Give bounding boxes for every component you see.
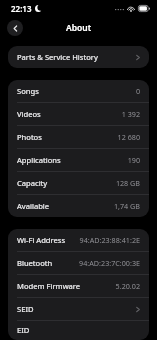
staticText: Modem Firmware xyxy=(17,281,81,291)
staticText: 128 GB xyxy=(115,178,140,188)
staticText: EID xyxy=(17,325,30,335)
staticText: Photos xyxy=(17,132,42,142)
staticText: Songs xyxy=(17,86,39,96)
button[interactable]: Parts & Service History xyxy=(8,46,149,68)
staticText: Bluetooth xyxy=(17,258,53,268)
button[interactable]: Available xyxy=(8,195,149,217)
button[interactable]: Wi-Fi Address xyxy=(8,229,149,252)
staticText: Capacity xyxy=(17,178,48,188)
staticText: 22:13 xyxy=(11,3,32,14)
staticText: About xyxy=(66,22,92,34)
button[interactable]: Back xyxy=(7,20,23,36)
button[interactable]: Bluetooth xyxy=(8,252,149,275)
staticText: Parts & Service History xyxy=(17,52,98,62)
button[interactable]: Videos xyxy=(8,103,149,126)
staticText: Wi-Fi Address xyxy=(17,235,66,245)
staticText: Applications xyxy=(17,155,61,165)
staticText: 94:AD:23:88:41:2E xyxy=(79,235,140,245)
button[interactable]: Applications xyxy=(8,149,149,172)
button[interactable]: Songs xyxy=(8,80,149,103)
staticText: Videos xyxy=(17,109,41,119)
staticText: 12 680 xyxy=(117,132,140,142)
button[interactable]: Photos xyxy=(8,126,149,149)
staticText: SEID xyxy=(17,304,34,314)
staticText: 1,74 GB xyxy=(113,201,140,211)
button[interactable]: SEID xyxy=(8,298,149,321)
staticText: 94:AD:23:7C:00:3E xyxy=(79,258,140,268)
button[interactable]: Modem Firmware xyxy=(8,275,149,298)
staticText: Available xyxy=(17,201,50,211)
button[interactable]: Capacity xyxy=(8,172,149,195)
button[interactable]: EID xyxy=(8,321,149,340)
staticText: 190 xyxy=(127,155,140,165)
staticText: 1 392 xyxy=(121,109,140,119)
staticText: 5.20.02 xyxy=(115,281,140,291)
staticText: 0 xyxy=(135,86,140,96)
